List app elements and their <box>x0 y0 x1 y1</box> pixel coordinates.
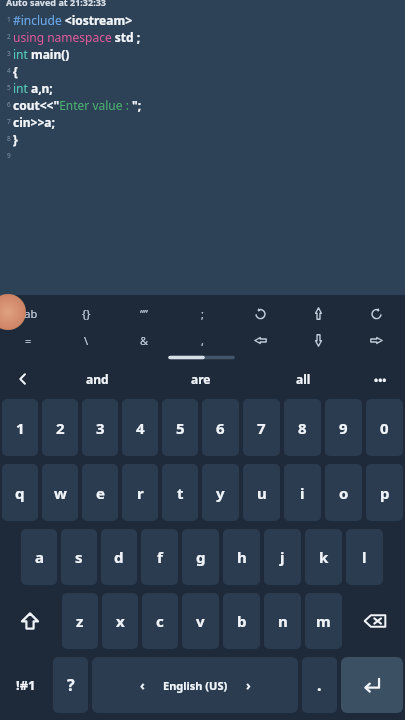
button[interactable]: u <box>243 464 280 521</box>
button[interactable]: 7 <box>243 399 280 456</box>
staticText: 5 <box>176 418 185 438</box>
button[interactable]: d <box>101 529 137 585</box>
staticText: 9 <box>339 418 348 438</box>
button[interactable]: Right <box>347 327 405 353</box>
staticText: { <box>13 63 18 79</box>
button[interactable]: r <box>122 464 158 521</box>
staticText: c <box>156 611 164 631</box>
staticText: 9 <box>7 151 11 160</box>
button[interactable]: Left <box>231 327 289 353</box>
button[interactable]: {} <box>57 299 115 327</box>
button[interactable]: m <box>305 593 342 649</box>
staticText: ‹ <box>140 676 145 694</box>
button[interactable]: l <box>346 529 383 585</box>
button[interactable]: Down <box>289 327 347 353</box>
staticText: k <box>319 547 329 567</box>
button[interactable]: p <box>366 464 403 521</box>
button[interactable]: & <box>115 327 173 353</box>
staticText: x <box>116 611 125 631</box>
button[interactable]: 1 <box>2 399 38 456</box>
staticText: v <box>196 611 205 631</box>
button[interactable]: 8 <box>284 399 321 456</box>
button[interactable]: and <box>45 363 149 395</box>
button[interactable]: k <box>305 529 342 585</box>
button[interactable]: h <box>223 529 260 585</box>
button[interactable]: 5 <box>162 399 198 456</box>
staticText: English (US) <box>163 678 228 693</box>
button[interactable]: “” <box>115 299 173 327</box>
button[interactable]: Enter <box>341 657 403 713</box>
button[interactable]: f <box>141 529 178 585</box>
staticText: Tab <box>19 306 38 321</box>
button[interactable]: b <box>223 593 260 649</box>
staticText: 4 <box>7 66 11 75</box>
button[interactable]: t <box>162 464 198 521</box>
button[interactable]: Backspace <box>344 589 405 653</box>
staticText: h <box>237 547 247 567</box>
button[interactable]: 4 <box>122 399 158 456</box>
staticText: 6 <box>216 418 225 438</box>
button[interactable]: n <box>264 593 301 649</box>
staticText: int a,n; <box>13 80 53 96</box>
button[interactable]: 0 <box>366 399 403 456</box>
button[interactable]: ‹ <box>92 657 298 713</box>
staticText: 1 <box>16 418 25 438</box>
button[interactable]: , <box>173 327 231 353</box>
button[interactable]: Redo <box>347 299 405 327</box>
button[interactable]: are <box>149 363 252 395</box>
button[interactable]: c <box>142 593 178 649</box>
button[interactable]: Up <box>289 299 347 327</box>
staticText: l <box>362 547 367 567</box>
staticText: z <box>76 611 84 631</box>
staticText: f <box>157 547 163 567</box>
button[interactable]: q <box>2 464 38 521</box>
button[interactable]: Previous <box>0 363 45 395</box>
button[interactable]: Tab <box>0 299 57 327</box>
button[interactable]: i <box>284 464 321 521</box>
button[interactable]: all <box>252 363 355 395</box>
button[interactable]: 3 <box>82 399 118 456</box>
button[interactable]: 9 <box>325 399 362 456</box>
button[interactable]: x <box>102 593 138 649</box>
staticText: 2 <box>7 32 11 41</box>
button[interactable]: z <box>62 593 98 649</box>
button[interactable]: g <box>182 529 219 585</box>
staticText: int main() <box>13 46 70 62</box>
button[interactable]: w <box>42 464 78 521</box>
button[interactable]: = <box>0 327 57 353</box>
button[interactable]: \ <box>57 327 115 353</box>
button[interactable]: 2 <box>42 399 78 456</box>
staticText: 2 <box>56 418 65 438</box>
staticText: p <box>380 483 390 503</box>
button[interactable]: v <box>182 593 219 649</box>
staticText: #include <iostream> <box>13 12 133 28</box>
button[interactable]: Shift <box>0 589 60 653</box>
staticText: cout<<"Enter value : "; <box>13 97 142 113</box>
button[interactable]: ? <box>53 657 88 713</box>
staticText: } <box>13 131 18 147</box>
button[interactable]: s <box>61 529 97 585</box>
button[interactable]: j <box>264 529 301 585</box>
staticText: “” <box>140 306 148 321</box>
button[interactable]: More <box>355 363 405 395</box>
button[interactable]: Undo <box>231 299 289 327</box>
staticText: 8 <box>298 418 307 438</box>
button[interactable]: e <box>82 464 118 521</box>
button[interactable]: 6 <box>202 399 239 456</box>
staticText: b <box>237 611 247 631</box>
staticText: y <box>216 483 225 503</box>
staticText: {} <box>82 306 91 321</box>
staticText: using namespace std ; <box>13 29 141 45</box>
button[interactable]: !#1 <box>2 657 49 713</box>
staticText: 3 <box>96 418 105 438</box>
button[interactable]: o <box>325 464 362 521</box>
button[interactable]: y <box>202 464 239 521</box>
button[interactable]: a <box>21 529 57 585</box>
staticText: 5 <box>7 83 11 92</box>
staticText: ? <box>67 674 75 696</box>
staticText: 6 <box>7 100 11 109</box>
button[interactable]: . <box>302 657 337 713</box>
staticText: g <box>196 547 206 567</box>
staticText: ••• <box>374 372 387 387</box>
button[interactable]: ; <box>173 299 231 327</box>
